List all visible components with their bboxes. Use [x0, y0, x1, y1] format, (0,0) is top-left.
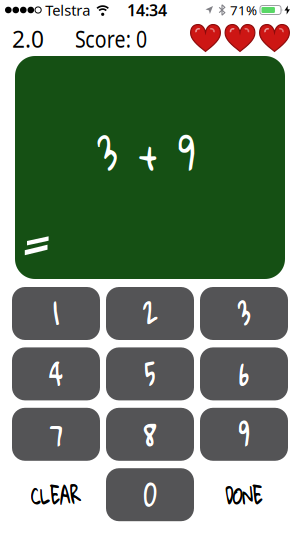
staticText: 9 — [176, 109, 197, 196]
staticText: CLEAR — [19, 473, 93, 517]
staticText: 71% — [230, 1, 257, 19]
button[interactable]: 1 — [12, 287, 100, 340]
button[interactable]: 0 — [106, 468, 194, 521]
staticText: 1 — [52, 282, 59, 343]
button[interactable]: 3 — [200, 287, 288, 340]
button[interactable]: 4 — [12, 347, 100, 400]
staticText: 2 — [140, 282, 160, 343]
staticText: Score: 0 — [75, 24, 159, 54]
staticText: 7 — [47, 403, 65, 464]
staticText: 3 — [95, 109, 120, 196]
staticText: 5 — [142, 343, 157, 404]
button[interactable]: 2 — [106, 287, 194, 340]
staticText: 9 — [236, 403, 251, 464]
button[interactable]: CLEAR — [12, 468, 100, 521]
button[interactable]: 9 — [200, 408, 288, 461]
staticText: + — [137, 109, 159, 196]
staticText: 4 — [46, 343, 65, 404]
staticText: 5 — [143, 342, 158, 403]
staticText: 7 — [47, 403, 65, 464]
staticText: DONE — [216, 472, 271, 517]
staticText: 6 — [237, 343, 251, 404]
button[interactable]: 8 — [106, 408, 194, 461]
staticText: 4 — [47, 342, 66, 403]
staticText: 0 — [141, 464, 159, 524]
staticText: 2.0 — [12, 24, 44, 54]
staticText: 3 — [236, 282, 253, 343]
staticText: 9 — [237, 403, 252, 464]
staticText: Telstra — [45, 0, 90, 20]
button[interactable]: 6 — [200, 347, 288, 400]
staticText: 8 — [142, 403, 159, 464]
staticText: 2 — [140, 282, 160, 343]
staticText: 6 — [237, 342, 251, 403]
staticText: 14:34 — [127, 0, 167, 21]
staticText: CLEAR — [19, 472, 93, 517]
staticText: DONE — [217, 473, 272, 517]
staticText: 1 — [53, 282, 60, 343]
button[interactable]: 7 — [12, 408, 100, 461]
staticText: 8 — [141, 403, 158, 464]
staticText: 3 — [235, 282, 252, 343]
button[interactable]: 5 — [106, 347, 194, 400]
button[interactable]: DONE — [200, 468, 288, 521]
staticText: 0 — [141, 463, 159, 524]
